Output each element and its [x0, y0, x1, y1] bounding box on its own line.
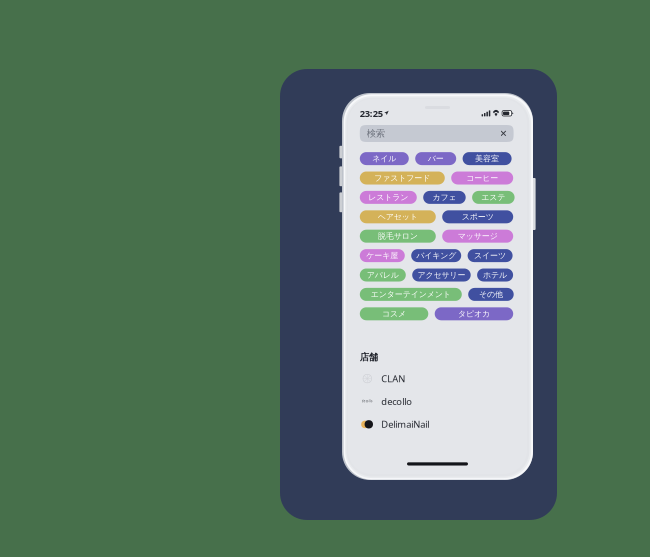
staticText: decollo: [381, 395, 412, 407]
button[interactable]: エンターテインメント: [360, 288, 462, 301]
staticText: アクセサリー: [417, 270, 465, 280]
button[interactable]: DelimaiNail: [362, 413, 482, 435]
button[interactable]: ファストフード: [360, 171, 445, 184]
button[interactable]: ホテル: [477, 268, 513, 281]
staticText: レストラン: [368, 192, 408, 202]
staticText: タピオカ: [458, 309, 490, 319]
staticText: CLAN: [381, 372, 405, 385]
button[interactable]: コーヒー: [451, 171, 513, 184]
staticText: エステ: [481, 192, 505, 202]
staticText: 店舗: [360, 351, 378, 363]
staticText: ホテル: [483, 270, 507, 280]
button[interactable]: バー: [415, 152, 456, 165]
button[interactable]: バイキング: [411, 249, 461, 262]
button[interactable]: ネイル: [360, 152, 409, 165]
staticText: アパレル: [367, 270, 399, 280]
staticText: カフェ: [432, 192, 456, 202]
staticText: コーヒー: [466, 173, 498, 183]
staticText: 美容室: [475, 154, 499, 163]
button[interactable]: ヘアセット: [360, 210, 436, 223]
button[interactable]: レストラン: [360, 191, 417, 204]
button[interactable]: ケーキ屋: [360, 249, 405, 262]
staticText: DelimaiNail: [381, 418, 429, 430]
staticText: ファストフード: [374, 173, 430, 183]
staticText: ✕: [500, 128, 508, 139]
button[interactable]: アパレル: [360, 268, 406, 281]
staticText: decollo: [362, 399, 373, 403]
staticText: ネイル: [372, 154, 396, 163]
staticText: ヘアセット: [378, 212, 418, 222]
staticText: 脱毛サロン: [378, 231, 418, 241]
button[interactable]: エステ: [472, 191, 515, 204]
button[interactable]: スイーツ: [468, 249, 513, 262]
button[interactable]: 美容室: [463, 152, 512, 165]
staticText: 23:25: [360, 107, 383, 119]
staticText: その他: [479, 289, 503, 299]
staticText: スイーツ: [474, 251, 506, 260]
staticText: マッサージ: [458, 231, 498, 241]
staticText: 検索: [367, 128, 385, 139]
staticText: ケーキ屋: [366, 251, 398, 260]
button[interactable]: マッサージ: [442, 230, 513, 243]
staticText: バー: [428, 154, 444, 163]
staticText: エンターテインメント: [371, 289, 451, 299]
staticText: コスメ: [382, 309, 406, 319]
button[interactable]: decollo: [362, 390, 482, 413]
button[interactable]: カフェ: [423, 191, 466, 204]
button[interactable]: コスメ: [360, 307, 428, 320]
button[interactable]: 脱毛サロン: [360, 230, 436, 243]
button[interactable]: CLAN: [362, 367, 482, 390]
button[interactable]: アクセサリー: [412, 268, 471, 281]
staticText: スポーツ: [462, 212, 494, 222]
button[interactable]: スポーツ: [442, 210, 513, 223]
button[interactable]: タピオカ: [435, 307, 513, 320]
staticText: バイキング: [416, 251, 456, 260]
button[interactable]: その他: [468, 288, 514, 301]
